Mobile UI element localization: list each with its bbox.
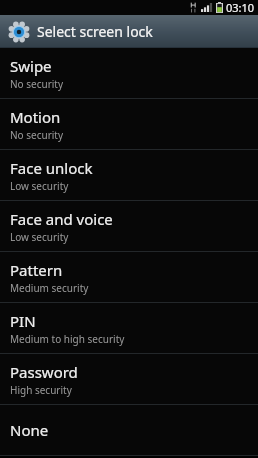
button[interactable]: Swipe (0, 48, 258, 98)
staticText: Low security (10, 179, 69, 193)
staticText: Motion (10, 107, 61, 127)
button[interactable]: Motion (0, 99, 258, 149)
staticText: Low security (10, 230, 69, 244)
button[interactable]: Face and voice (0, 201, 258, 251)
staticText: Medium security (10, 281, 89, 295)
staticText: Medium to high security (10, 332, 125, 346)
staticText: High security (10, 383, 72, 397)
staticText: Select screen lock (37, 22, 153, 41)
staticText: 03:10 (226, 0, 255, 15)
staticText: Face unlock (10, 158, 93, 178)
staticText: PIN (10, 311, 36, 331)
staticText: Swipe (10, 56, 52, 76)
button[interactable]: None (0, 405, 258, 455)
staticText: Pattern (10, 260, 63, 280)
staticText: No security (10, 128, 64, 142)
other: Settings (9, 22, 29, 42)
button[interactable]: Face unlock (0, 150, 258, 200)
staticText: No security (10, 77, 64, 91)
staticText: Face and voice (10, 209, 113, 229)
button[interactable]: Password (0, 354, 258, 404)
staticText: Password (10, 362, 78, 382)
staticText: None (10, 420, 49, 440)
button[interactable]: Pattern (0, 252, 258, 302)
button[interactable]: PIN (0, 303, 258, 353)
